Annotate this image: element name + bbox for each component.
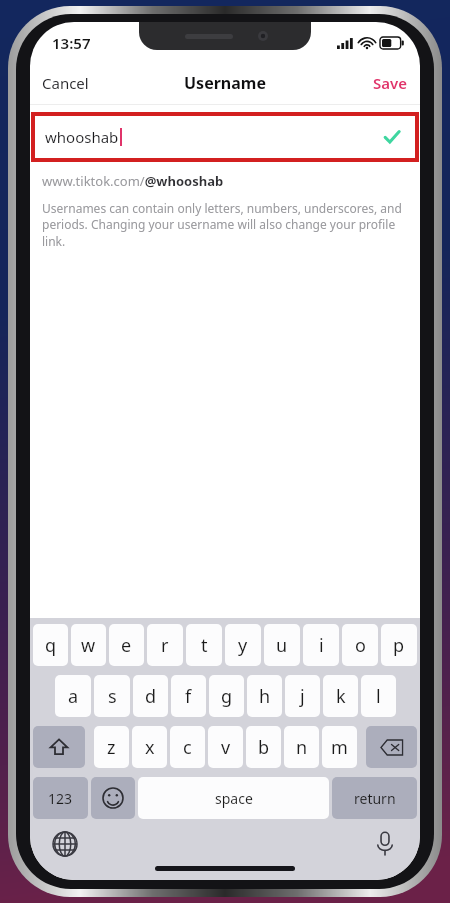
staticText: 123 [48, 789, 73, 808]
button[interactable]: t [186, 624, 222, 666]
staticText: t [201, 633, 208, 658]
button[interactable]: return [332, 777, 417, 819]
staticText: Username [184, 72, 266, 94]
staticText: v [221, 735, 231, 760]
staticText: c [183, 735, 192, 760]
button[interactable]: w [71, 624, 106, 666]
staticText: b [258, 735, 270, 760]
button[interactable]: Emoji [91, 777, 135, 819]
staticText: k [336, 684, 346, 709]
staticText: n [296, 735, 308, 760]
button[interactable]: m [322, 726, 357, 768]
button[interactable]: Dictation [368, 827, 402, 861]
button[interactable]: h [247, 675, 282, 717]
staticText: whooshab [45, 127, 119, 147]
button[interactable]: Shift [33, 726, 85, 768]
button[interactable]: e [109, 624, 144, 666]
staticText: return [354, 789, 396, 808]
staticText: s [108, 684, 117, 709]
staticText: Save [373, 73, 408, 93]
staticText: h [259, 684, 271, 709]
staticText: f [185, 684, 192, 709]
button[interactable]: o [342, 624, 378, 666]
staticText: d [145, 684, 157, 709]
staticText: y [238, 633, 248, 658]
staticText: x [145, 735, 155, 760]
button[interactable]: j [285, 675, 320, 717]
button[interactable]: v [208, 726, 243, 768]
button[interactable]: i [303, 624, 339, 666]
staticText: u [276, 633, 288, 658]
staticText: z [107, 735, 116, 760]
staticText: www.tiktok.com/@whooshab [42, 172, 224, 190]
staticText: m [331, 735, 348, 760]
button[interactable]: s [94, 675, 130, 717]
button[interactable]: d [133, 675, 168, 717]
button[interactable]: f [171, 675, 206, 717]
staticText: o [355, 633, 366, 658]
staticText: Usernames can contain only letters, numb… [42, 200, 408, 250]
button[interactable]: a [55, 675, 91, 717]
button[interactable]: g [209, 675, 244, 717]
button[interactable]: 123 [33, 777, 88, 819]
button[interactable]: Change keyboard language [48, 827, 82, 861]
staticText: w [81, 633, 96, 658]
button[interactable]: Save [361, 67, 420, 99]
button[interactable]: space [138, 777, 329, 819]
staticText: p [393, 633, 405, 658]
button[interactable]: p [381, 624, 417, 666]
button[interactable]: k [323, 675, 358, 717]
button[interactable]: r [147, 624, 183, 666]
staticText: r [161, 633, 169, 658]
staticText: Cancel [42, 73, 89, 93]
button[interactable]: whooshab [31, 112, 419, 162]
button[interactable]: x [132, 726, 167, 768]
button[interactable]: Backspace [366, 726, 417, 768]
button[interactable]: z [94, 726, 129, 768]
button[interactable]: u [264, 624, 300, 666]
button[interactable]: n [284, 726, 319, 768]
button[interactable]: Cancel [30, 67, 101, 99]
staticText: 13:57 [52, 33, 91, 53]
staticText: q [45, 633, 57, 658]
staticText: e [121, 633, 132, 658]
staticText: l [376, 684, 381, 709]
staticText: i [319, 633, 324, 658]
button[interactable]: b [246, 726, 281, 768]
button[interactable]: y [225, 624, 261, 666]
staticText: g [221, 684, 233, 709]
button[interactable]: l [361, 675, 396, 717]
staticText: space [215, 789, 253, 808]
staticText: j [300, 684, 305, 709]
button[interactable]: q [33, 624, 68, 666]
button[interactable]: c [170, 726, 205, 768]
staticText: a [68, 684, 79, 709]
